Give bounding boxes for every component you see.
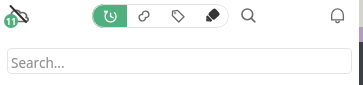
- button[interactable]: Links: [127, 4, 161, 28]
- button[interactable]: Notifications: [326, 4, 348, 26]
- button[interactable]: Search...: [7, 48, 352, 74]
- button[interactable]: Highlights: [195, 4, 229, 28]
- staticText: 11: [6, 15, 17, 27]
- button[interactable]: Tags: [161, 4, 195, 28]
- button[interactable]: History: [92, 4, 127, 28]
- button[interactable]: Search: [237, 4, 259, 26]
- button[interactable]: Offline, 11 pending: [1, 1, 31, 31]
- staticText: Search...: [11, 54, 65, 72]
